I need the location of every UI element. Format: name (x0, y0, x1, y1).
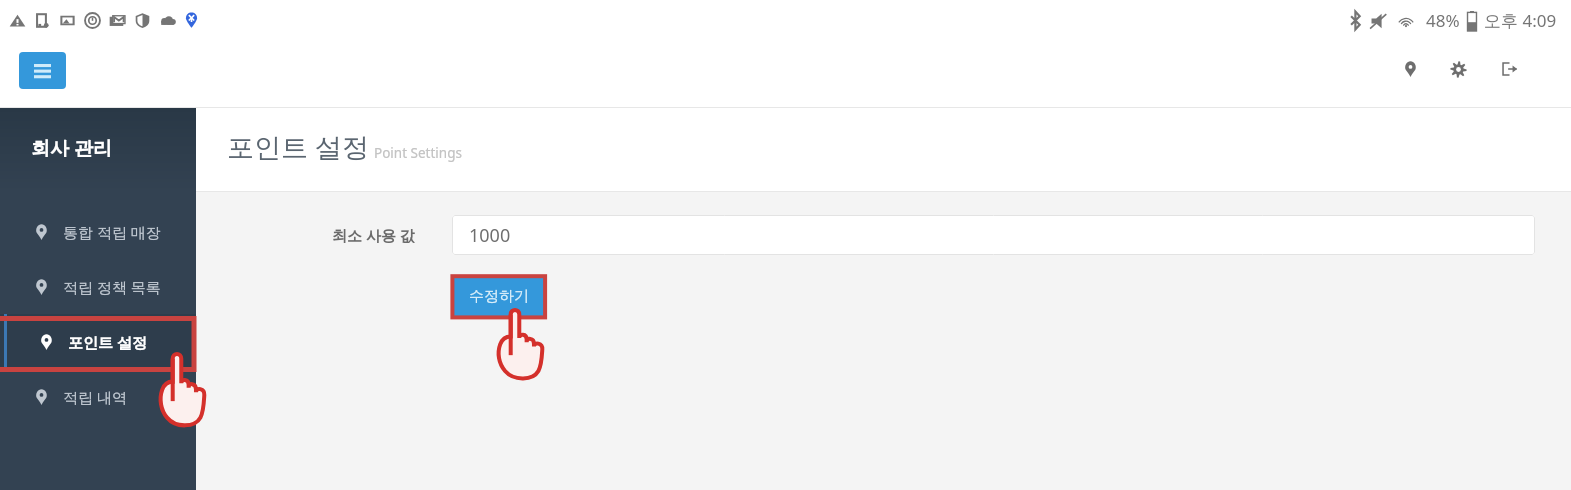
button[interactable]: Logout (1490, 47, 1528, 91)
button[interactable]: 포인트 설정 (0, 314, 196, 369)
button[interactable]: 통합 적립 매장 (0, 204, 196, 259)
staticText: 포인트 설정 (68, 332, 147, 352)
button[interactable]: Settings (1439, 47, 1477, 91)
button[interactable]: 적립 정책 목록 (0, 259, 196, 314)
staticText: 최소 사용 값 (332, 225, 415, 245)
staticText: 통합 적립 매장 (63, 222, 161, 242)
button[interactable]: 1000 (452, 215, 1535, 255)
staticText: 적립 내역 (63, 387, 127, 407)
staticText: 수정하기 (469, 287, 529, 306)
staticText: 오후 4:09 (1484, 9, 1557, 32)
staticText: 포인트 설정 (227, 128, 370, 165)
staticText: 48% (1426, 9, 1460, 32)
staticText: Point Settings (374, 144, 462, 162)
button[interactable]: Menu (19, 52, 66, 89)
staticText: 1000 (469, 223, 511, 248)
staticText: 적립 정책 목록 (63, 277, 161, 297)
button[interactable]: 수정하기 (454, 277, 544, 316)
button[interactable]: Location (1391, 47, 1429, 91)
staticText: 회사 관리 (31, 135, 112, 161)
button[interactable]: 적립 내역 (0, 369, 196, 424)
